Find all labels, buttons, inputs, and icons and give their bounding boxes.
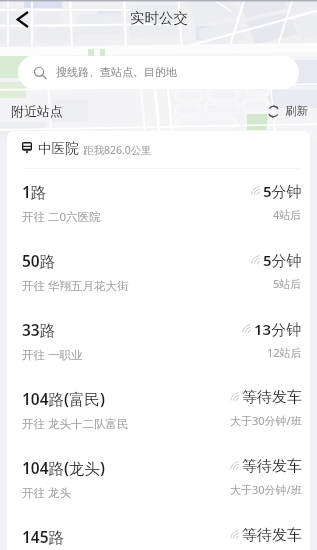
staticText: 刷新 [285,104,308,118]
staticText: 大于30分钟/班 [230,482,302,497]
staticText: 等待发车 [242,388,302,407]
staticText: 开往 龙头 [22,485,71,501]
staticText: 中医院 [38,140,79,157]
staticText: 4站后 [273,207,302,222]
staticText: 开往 一职业 [22,347,83,363]
button[interactable]: 104路(富民) [7,376,310,445]
staticText: 大于30分钟/班 [230,413,302,428]
staticText: 距我826.0公里 [83,143,152,157]
staticText: 开往 龙头十二队富民 [22,416,129,432]
staticText: 等待发车 [242,526,302,545]
button[interactable]: 145路 [7,514,310,550]
staticText: 等待发车 [242,457,302,476]
staticText: 开往 二0六医院 [22,209,101,225]
staticText: 附近站点 [11,103,63,119]
staticText: 33路 [22,319,56,340]
staticText: 145路 [22,526,65,547]
staticText: 5站后 [273,276,302,291]
button[interactable]: 搜线路、查站点、目的地 [18,56,299,89]
staticText: 13分钟 [254,319,302,339]
staticText: 5分钟 [263,250,302,270]
staticText: 开往 华翔五月花大街 [22,278,129,294]
staticText: 50路 [22,250,56,271]
button[interactable]: 刷新 [267,104,308,118]
staticText: 104路(龙头) [22,457,106,478]
button[interactable]: Back [6,3,38,35]
button[interactable]: 104路(龙头) [7,445,310,514]
staticText: 实时公交 [130,9,188,27]
button[interactable]: 1路 [7,169,310,238]
staticText: 1路 [22,181,47,202]
staticText: 5分钟 [263,181,302,201]
button[interactable]: 50路 [7,238,310,307]
button[interactable]: 33路 [7,307,310,376]
staticText: 104路(富民) [22,388,106,409]
staticText: 搜线路、查站点、目的地 [56,65,177,79]
staticText: 12站后 [267,345,302,360]
